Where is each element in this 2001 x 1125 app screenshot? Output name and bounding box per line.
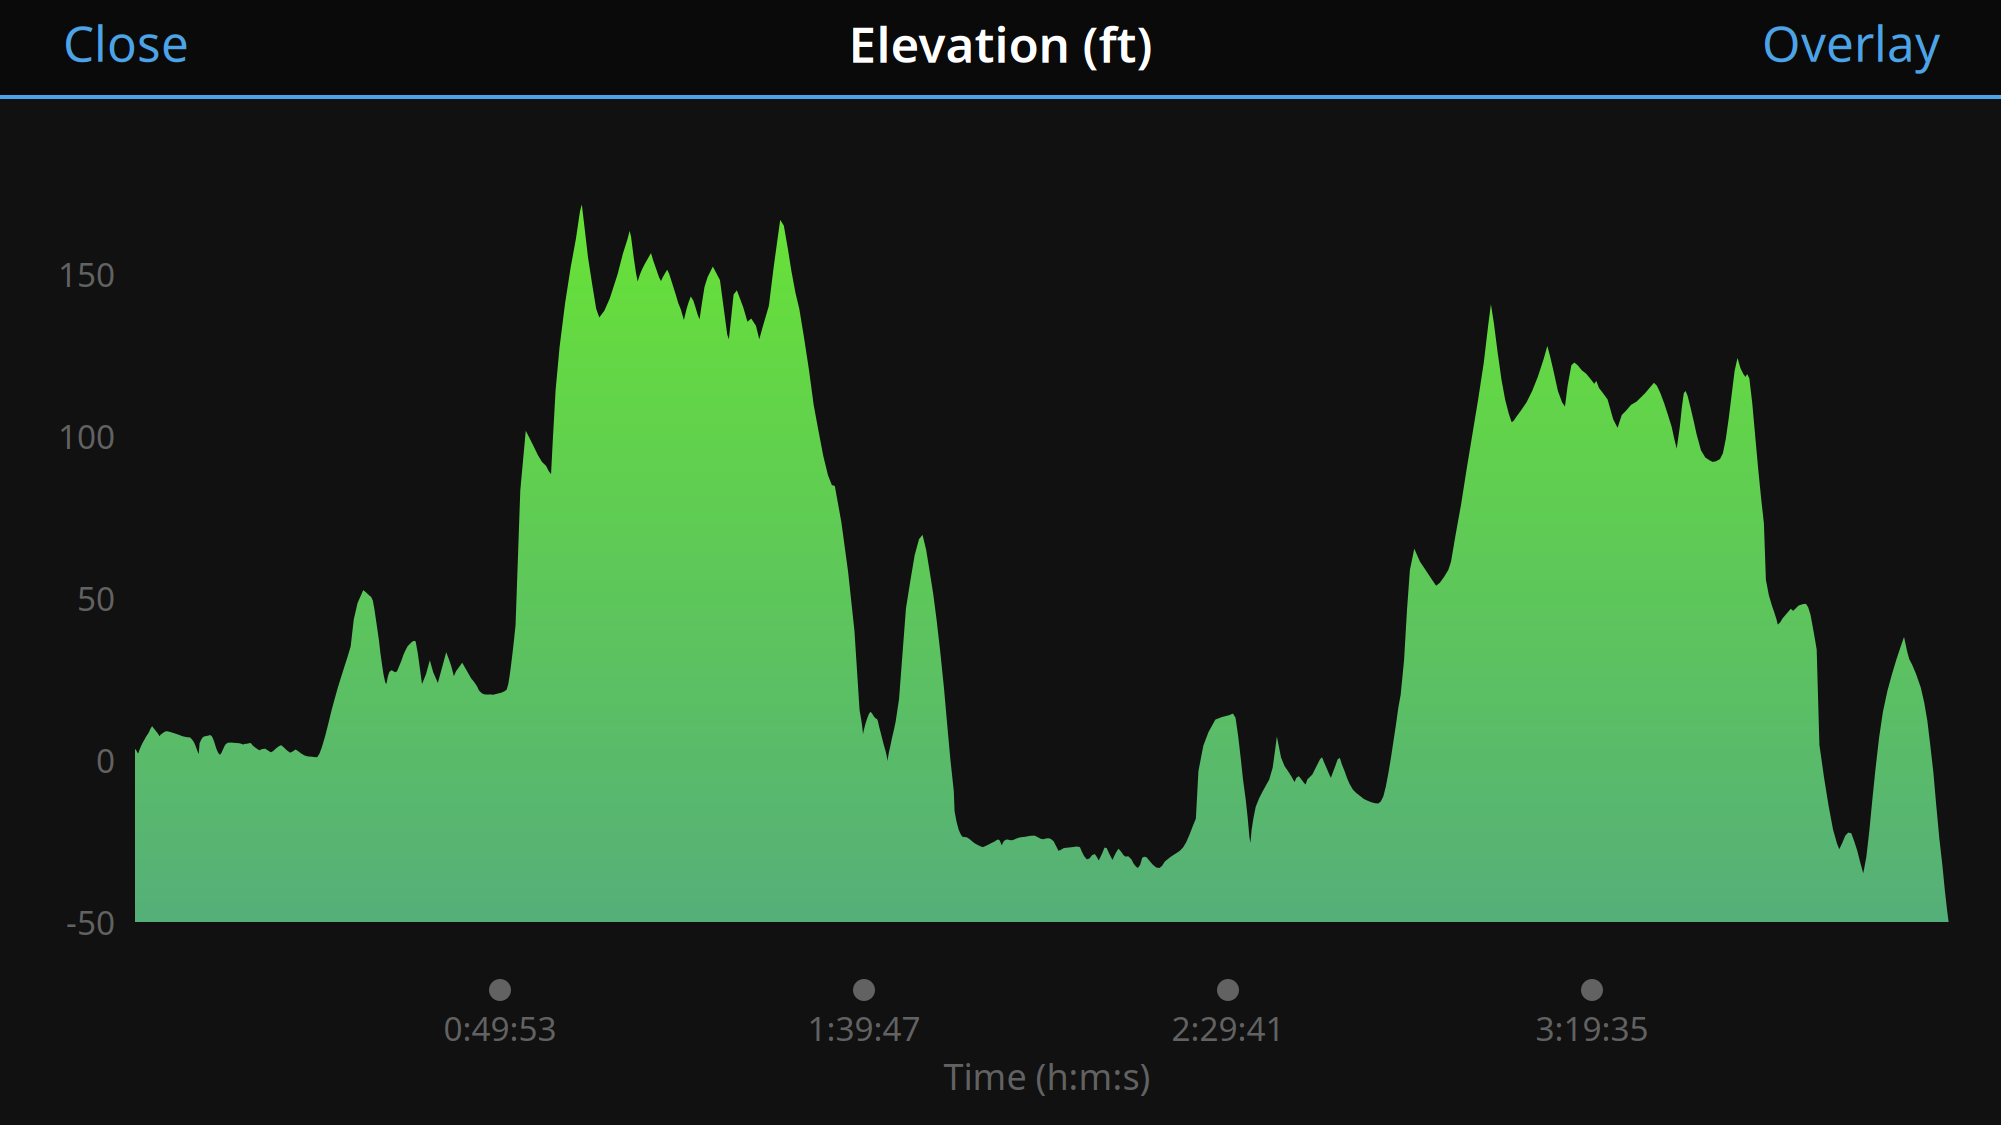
staticText: -50 [66, 900, 115, 944]
staticText: 0:49:53 [443, 1006, 556, 1050]
staticText: Time (h:m:s) [943, 1052, 1150, 1100]
staticText: 1:39:47 [807, 1006, 920, 1050]
staticText: Close [63, 10, 189, 75]
staticText: Overlay [1762, 10, 1940, 75]
staticText: 50 [77, 576, 115, 620]
staticText: 0 [96, 738, 115, 782]
button[interactable]: Close [51, 0, 201, 97]
staticText: 100 [58, 414, 115, 458]
staticText: 2:29:41 [1171, 1006, 1284, 1050]
button[interactable]: Overlay [1750, 0, 1952, 97]
staticText: 150 [58, 252, 115, 296]
staticText: 3:19:35 [1535, 1006, 1648, 1050]
staticText: Elevation (ft) [848, 11, 1152, 76]
